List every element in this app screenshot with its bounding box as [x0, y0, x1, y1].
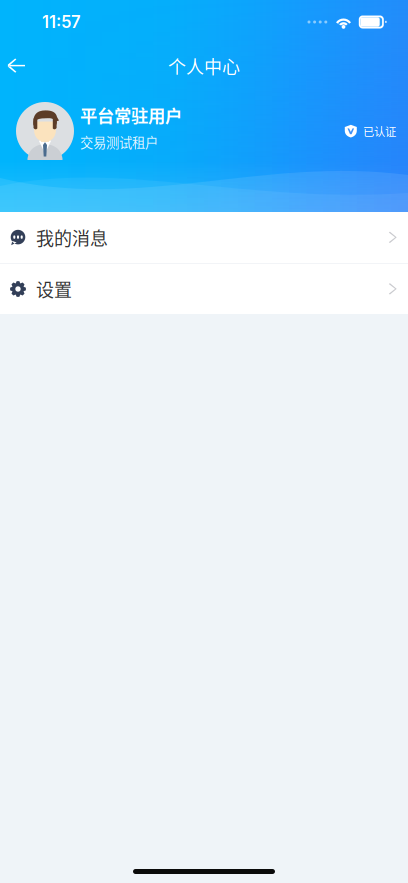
button[interactable]: 设置 — [0, 264, 408, 314]
staticText: 已认证 — [363, 123, 396, 139]
staticText: 交易测试租户 — [80, 132, 158, 152]
staticText: 我的消息 — [36, 224, 108, 251]
staticText: 个人中心 — [168, 53, 240, 79]
button[interactable]: 我的消息 — [0, 212, 408, 263]
button[interactable]: Back — [0, 44, 40, 88]
staticText: 设置 — [36, 276, 72, 302]
staticText: 平台常驻用户 — [80, 102, 182, 127]
staticText: 11:57 — [42, 12, 81, 32]
